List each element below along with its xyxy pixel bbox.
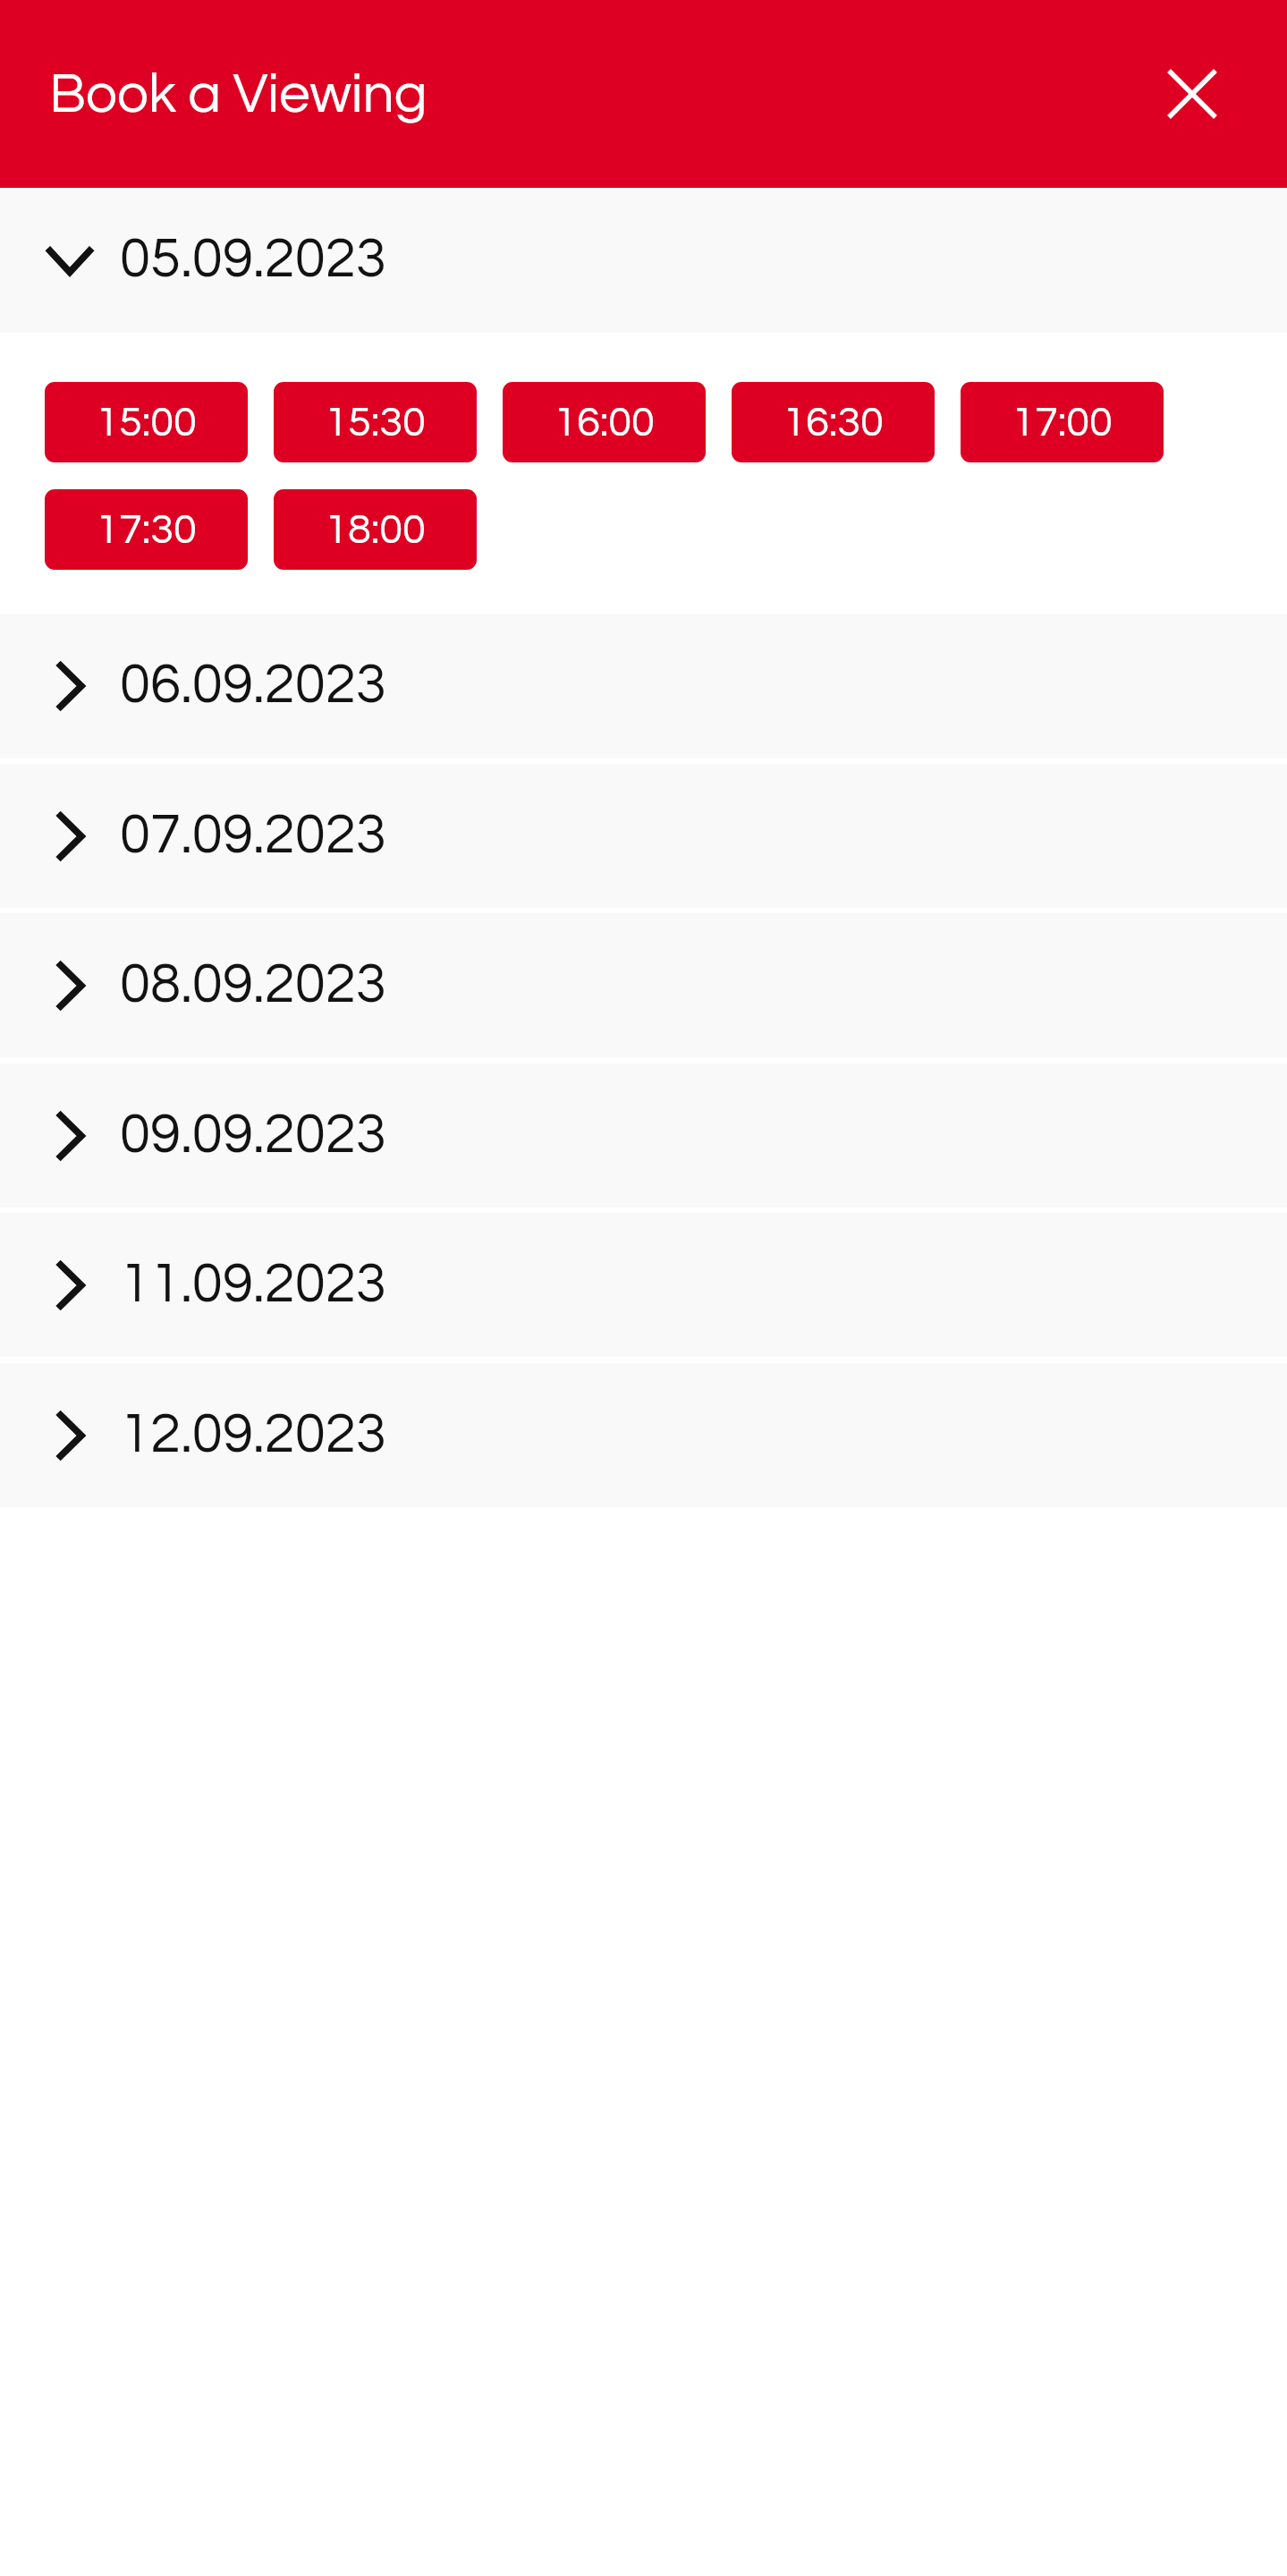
button[interactable]: 06.09.2023 bbox=[0, 614, 1287, 758]
staticText: 16:30 bbox=[783, 401, 884, 444]
button[interactable]: Close bbox=[1149, 51, 1235, 137]
button[interactable]: 09.09.2023 bbox=[0, 1063, 1287, 1207]
staticText: 17:00 bbox=[1012, 401, 1113, 444]
staticText: 15:00 bbox=[96, 401, 197, 444]
staticText: 09.09.2023 bbox=[120, 1106, 386, 1164]
button[interactable]: 15:30 bbox=[274, 382, 477, 462]
staticText: 06.09.2023 bbox=[120, 657, 386, 714]
button[interactable]: 07.09.2023 bbox=[0, 764, 1287, 908]
staticText: 18:00 bbox=[325, 508, 426, 551]
staticText: 12.09.2023 bbox=[120, 1406, 386, 1463]
button[interactable]: 15:00 bbox=[45, 382, 248, 462]
button[interactable]: 16:00 bbox=[503, 382, 706, 462]
button[interactable]: 17:30 bbox=[45, 489, 248, 570]
staticText: 11.09.2023 bbox=[120, 1256, 386, 1313]
staticText: 17:30 bbox=[96, 508, 197, 551]
button[interactable]: 17:00 bbox=[961, 382, 1164, 462]
button[interactable]: 18:00 bbox=[274, 489, 477, 570]
staticText: 07.09.2023 bbox=[120, 807, 386, 864]
staticText: Book a Viewing bbox=[49, 66, 428, 123]
button[interactable]: 12.09.2023 bbox=[0, 1363, 1287, 1507]
button[interactable]: 05.09.2023 bbox=[0, 188, 1287, 333]
staticText: 08.09.2023 bbox=[120, 956, 386, 1013]
button[interactable]: 16:30 bbox=[732, 382, 935, 462]
button[interactable]: 08.09.2023 bbox=[0, 913, 1287, 1057]
staticText: 05.09.2023 bbox=[120, 231, 386, 288]
staticText: 15:30 bbox=[325, 401, 426, 444]
button[interactable]: 11.09.2023 bbox=[0, 1213, 1287, 1357]
staticText: 16:00 bbox=[554, 401, 655, 444]
